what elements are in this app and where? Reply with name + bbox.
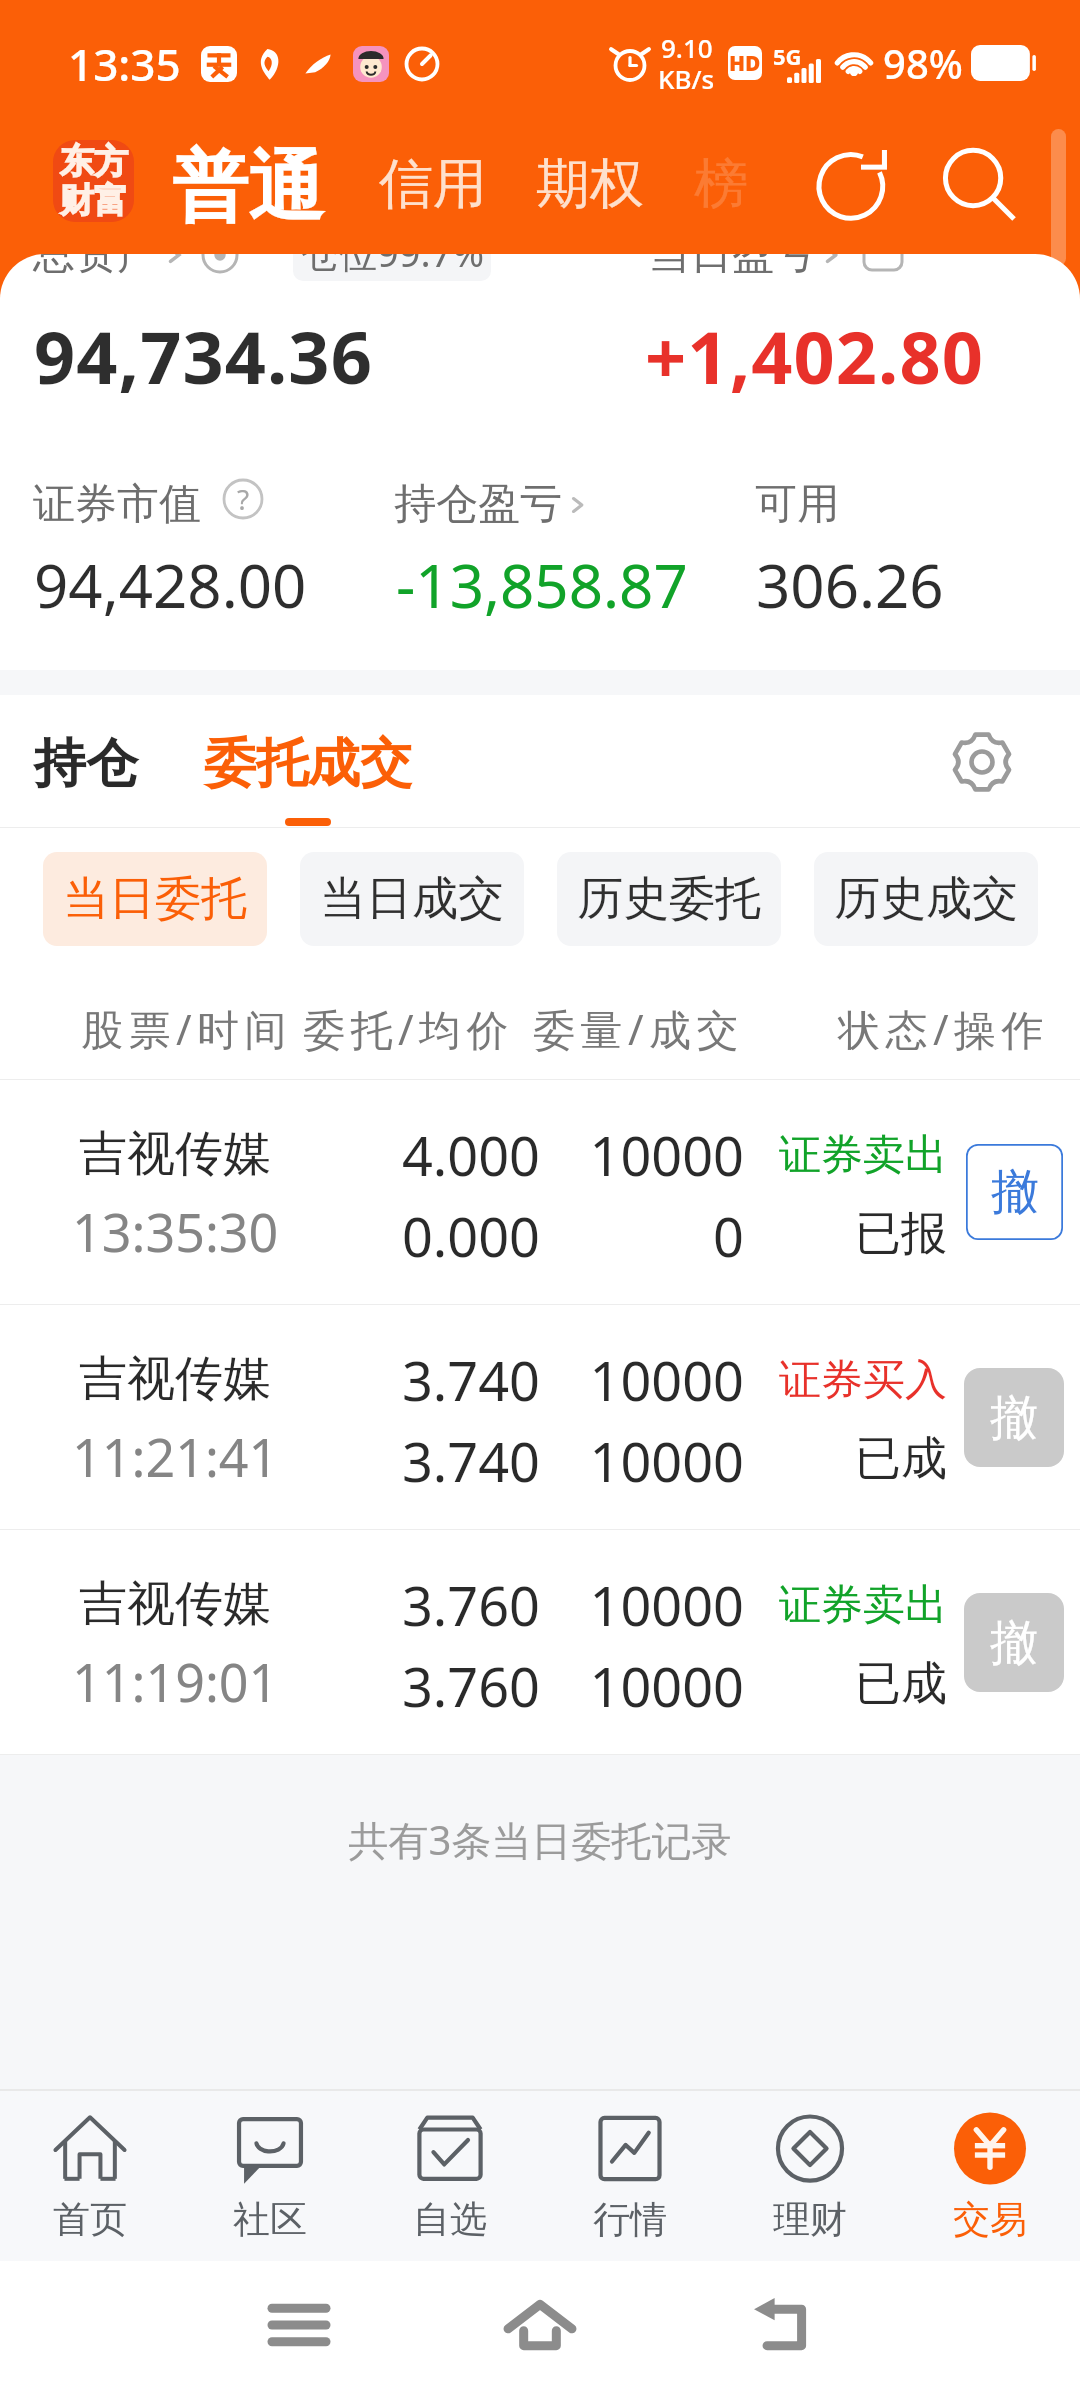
staticText: HD bbox=[729, 49, 761, 78]
button[interactable]: 撤 bbox=[964, 1593, 1064, 1692]
button[interactable]: 行情 bbox=[540, 2089, 720, 2261]
staticText: 自选 bbox=[413, 2196, 487, 2243]
staticText: 306.26 bbox=[756, 544, 944, 626]
button[interactable]: 历史成交 bbox=[814, 852, 1038, 946]
button[interactable]: East Money bbox=[53, 140, 134, 222]
staticText: 交易 bbox=[953, 2196, 1027, 2243]
staticText: 吉视传媒 bbox=[79, 1574, 271, 1634]
staticText: 可用 bbox=[755, 478, 839, 531]
staticText: 3.760 bbox=[301, 1568, 540, 1642]
button[interactable]: Search bbox=[932, 139, 1024, 231]
staticText: 吉视传媒 bbox=[79, 1349, 271, 1409]
staticText: -13,858.87 bbox=[396, 544, 688, 626]
staticText: 总资产 bbox=[33, 254, 159, 281]
button[interactable]: 期权 bbox=[536, 150, 644, 218]
button[interactable]: Settings bbox=[945, 725, 1019, 799]
staticText: 委托成交 bbox=[204, 731, 412, 797]
staticText: 13:35:30 bbox=[72, 1196, 279, 1267]
staticText: 当日委托 bbox=[63, 870, 247, 928]
button[interactable]: 历史委托 bbox=[557, 852, 781, 946]
staticText: 历史成交 bbox=[834, 870, 1018, 928]
staticText: 已成 bbox=[746, 1430, 947, 1488]
staticText: 状态/操作 bbox=[838, 1000, 1050, 1057]
staticText: 5G bbox=[773, 41, 802, 71]
staticText: 当日盈亏 bbox=[648, 254, 816, 281]
staticText: 撤 bbox=[990, 1613, 1038, 1673]
button[interactable]: 自选 bbox=[360, 2089, 540, 2261]
staticText: +1,402.80 bbox=[0, 307, 984, 405]
staticText: 委量/成交 bbox=[533, 1000, 745, 1057]
staticText: 首页 bbox=[53, 2196, 127, 2243]
button[interactable]: 当日委托 bbox=[43, 852, 267, 946]
button[interactable]: 持仓 bbox=[34, 731, 138, 797]
staticText: 吉视传媒 bbox=[79, 1124, 271, 1184]
staticText: 13:35 bbox=[68, 34, 181, 94]
staticText: 委托/均价 bbox=[303, 1000, 515, 1057]
staticText: 11:21:41 bbox=[72, 1421, 279, 1492]
staticText: 仓位99.7% bbox=[301, 254, 484, 278]
button[interactable]: 交易 bbox=[900, 2089, 1080, 2261]
button[interactable]: 撤 bbox=[964, 1368, 1064, 1467]
staticText: 东方 bbox=[60, 140, 128, 183]
staticText: 财富 bbox=[60, 179, 128, 222]
staticText: 0.000 bbox=[301, 1199, 540, 1273]
staticText: KB/s bbox=[658, 61, 715, 96]
button[interactable]: Refresh bbox=[808, 139, 900, 231]
staticText: 已报 bbox=[746, 1205, 947, 1263]
staticText: 证券市值 bbox=[33, 478, 201, 531]
staticText: 持仓盈亏 bbox=[394, 478, 562, 531]
staticText: 10000 bbox=[543, 1424, 744, 1498]
staticText: 榜 bbox=[694, 150, 748, 218]
staticText: ? bbox=[237, 480, 250, 518]
staticText: 11:19:01 bbox=[72, 1646, 279, 1717]
staticText: 0 bbox=[543, 1199, 744, 1273]
staticText: 3.740 bbox=[301, 1424, 540, 1498]
button[interactable]: 理财 bbox=[720, 2089, 900, 2261]
staticText: 证券卖出 bbox=[746, 1579, 947, 1632]
staticText: 股票/时间 bbox=[81, 1000, 293, 1057]
staticText: 历史委托 bbox=[577, 870, 761, 928]
button[interactable]: 首页 bbox=[0, 2089, 180, 2261]
staticText: 社区 bbox=[233, 2196, 307, 2243]
staticText: 4.000 bbox=[301, 1118, 540, 1192]
staticText: 信用 bbox=[379, 150, 487, 218]
staticText: 证券卖出 bbox=[746, 1129, 947, 1182]
staticText: 94,734.36 bbox=[34, 307, 373, 405]
button[interactable]: 委托成交 bbox=[204, 731, 412, 797]
staticText: 98% bbox=[883, 36, 963, 90]
staticText: 10000 bbox=[543, 1649, 744, 1723]
staticText: 10000 bbox=[543, 1343, 744, 1417]
button[interactable]: Recents bbox=[253, 2279, 345, 2371]
staticText: 普通 bbox=[172, 140, 324, 236]
button[interactable]: 社区 bbox=[180, 2089, 360, 2261]
staticText: 证券买入 bbox=[746, 1354, 947, 1407]
staticText: 94,428.00 bbox=[34, 544, 307, 626]
staticText: 已成 bbox=[746, 1655, 947, 1713]
staticText: 理财 bbox=[773, 2196, 847, 2243]
staticText: 持仓 bbox=[34, 731, 138, 797]
staticText: 10000 bbox=[543, 1568, 744, 1642]
button[interactable]: 信用 bbox=[379, 150, 487, 218]
staticText: 撤 bbox=[990, 1388, 1038, 1448]
staticText: 期权 bbox=[536, 150, 644, 218]
staticText: 当日成交 bbox=[320, 870, 504, 928]
staticText: 3.760 bbox=[301, 1649, 540, 1723]
staticText: 共有3条当日委托记录 bbox=[0, 1812, 1080, 1867]
button[interactable]: Home bbox=[494, 2279, 586, 2371]
staticText: 10000 bbox=[543, 1118, 744, 1192]
button[interactable]: 普通 bbox=[172, 140, 324, 236]
button[interactable]: Back bbox=[734, 2279, 826, 2371]
button[interactable]: 撤 bbox=[966, 1144, 1063, 1240]
staticText: 行情 bbox=[593, 2196, 667, 2243]
staticText: 9.10 bbox=[661, 30, 713, 65]
staticText: 撤 bbox=[991, 1162, 1039, 1222]
button[interactable]: 当日成交 bbox=[300, 852, 524, 946]
staticText: 3.740 bbox=[301, 1343, 540, 1417]
